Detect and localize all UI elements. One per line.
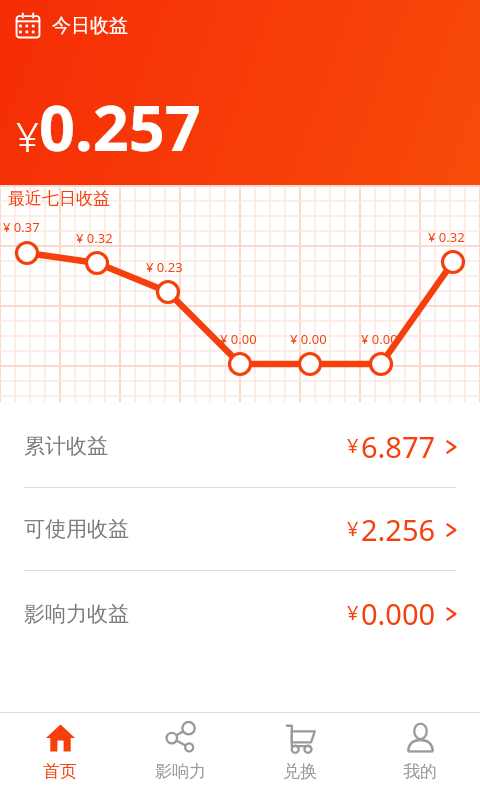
staticText: 首页 bbox=[43, 761, 77, 782]
staticText: 0.257 bbox=[39, 84, 201, 170]
staticText: ¥ 0.32 bbox=[428, 228, 465, 246]
button[interactable]: 影响力收益 bbox=[0, 571, 480, 656]
button[interactable]: 影响力 bbox=[120, 713, 240, 800]
staticText: 今日收益 bbox=[52, 14, 128, 38]
staticText: 累计收益 bbox=[24, 433, 108, 459]
staticText: ¥ bbox=[16, 109, 39, 163]
staticText: 最近七日收益 bbox=[8, 188, 110, 209]
staticText: 0.000 bbox=[361, 594, 436, 633]
staticText: ¥ 0.37 bbox=[3, 218, 40, 236]
staticText: ¥ bbox=[347, 515, 359, 542]
button[interactable]: 首页 bbox=[0, 713, 120, 800]
button[interactable]: 累计收益 bbox=[0, 405, 480, 488]
staticText: ¥ 0.00 bbox=[290, 330, 327, 348]
staticText: 兑换 bbox=[283, 761, 317, 782]
staticText: ¥ 0.00 bbox=[220, 330, 257, 348]
staticText: ¥ 0.00 bbox=[361, 330, 398, 348]
staticText: 2.256 bbox=[361, 510, 436, 549]
staticText: 影响力收益 bbox=[24, 601, 129, 627]
staticText: 影响力 bbox=[155, 761, 206, 782]
staticText: 我的 bbox=[403, 761, 437, 782]
staticText: ¥ bbox=[347, 599, 359, 626]
button[interactable]: 兑换 bbox=[240, 713, 360, 800]
staticText: 可使用收益 bbox=[24, 516, 129, 542]
button[interactable]: 我的 bbox=[360, 713, 480, 800]
staticText: 6.877 bbox=[361, 427, 436, 466]
staticText: ¥ 0.23 bbox=[146, 258, 183, 276]
button[interactable]: 可使用收益 bbox=[0, 488, 480, 571]
staticText: ¥ 0.32 bbox=[76, 229, 113, 247]
staticText: ¥ bbox=[347, 432, 359, 459]
